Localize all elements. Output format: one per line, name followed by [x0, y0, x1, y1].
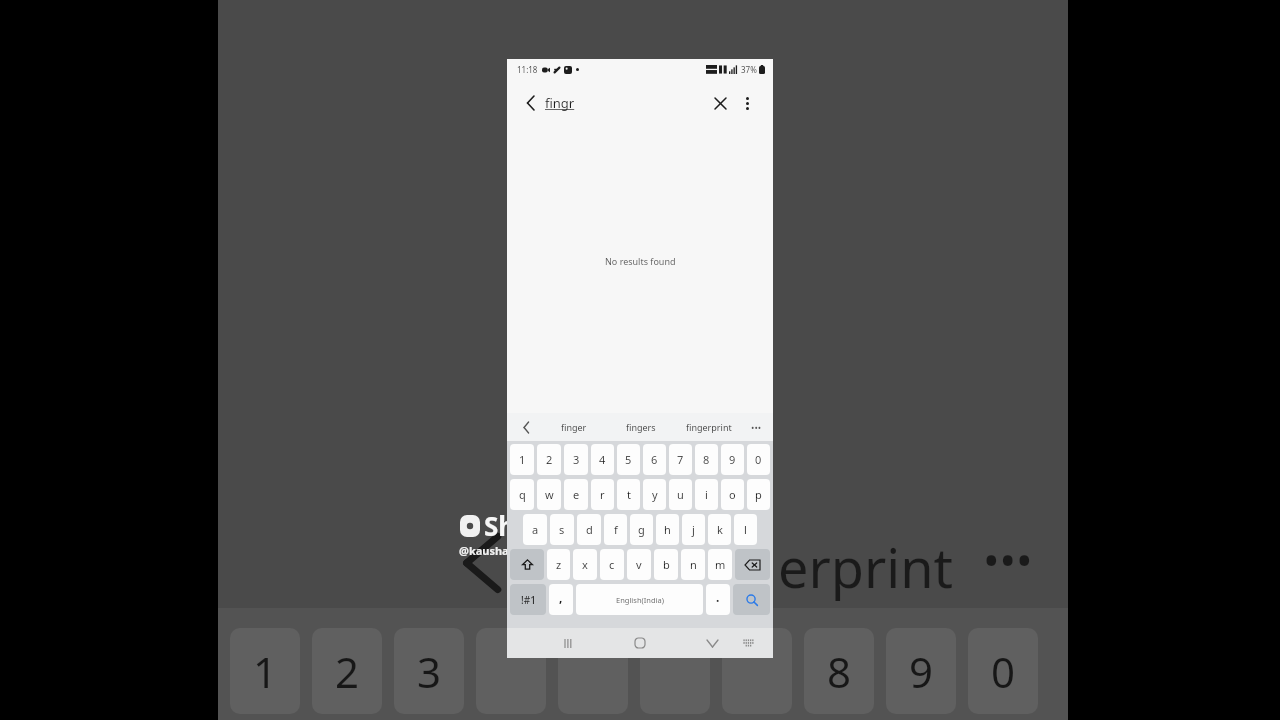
button[interactable]: More options	[734, 90, 760, 116]
staticText: 3	[417, 643, 442, 700]
button[interactable]: l	[734, 514, 757, 545]
staticText: g	[638, 522, 645, 537]
button[interactable]: ,	[549, 584, 573, 615]
button[interactable]: 4	[591, 444, 614, 475]
button[interactable]: Home	[627, 630, 653, 656]
staticText: s	[559, 522, 565, 537]
staticText: 2	[335, 643, 360, 700]
staticText: fingerprint	[686, 421, 732, 433]
button[interactable]: u	[669, 479, 692, 510]
staticText: No results found	[605, 255, 676, 267]
button[interactable]: 0	[747, 444, 770, 475]
button[interactable]: !#1	[510, 584, 546, 615]
button[interactable]: 6	[643, 444, 666, 475]
staticText: a	[532, 522, 539, 537]
staticText: z	[556, 557, 562, 572]
button[interactable]: s	[550, 514, 574, 545]
staticText: e	[573, 487, 580, 502]
staticText: 2	[546, 452, 553, 467]
button[interactable]: Shift	[510, 549, 544, 580]
button[interactable]: 8	[695, 444, 718, 475]
button[interactable]: f	[604, 514, 627, 545]
staticText: Sho	[484, 508, 532, 543]
staticText: •••	[751, 421, 762, 433]
staticText: d	[586, 522, 593, 537]
button[interactable]: Search	[733, 584, 770, 615]
button[interactable]: 2	[537, 444, 561, 475]
button[interactable]: t	[617, 479, 640, 510]
staticText: erprint	[778, 530, 954, 604]
staticText: w	[545, 487, 554, 502]
button[interactable]: b	[654, 549, 678, 580]
button[interactable]: v	[627, 549, 651, 580]
button[interactable]: 9	[721, 444, 744, 475]
staticText: @kaushalkishor8885	[459, 543, 572, 558]
staticText: 8	[703, 452, 710, 467]
button[interactable]: y	[643, 479, 666, 510]
button[interactable]: r	[591, 479, 614, 510]
staticText: u	[677, 487, 684, 502]
button[interactable]: 1	[510, 444, 534, 475]
button[interactable]: d	[577, 514, 601, 545]
staticText: n	[690, 557, 697, 572]
button[interactable]: x	[573, 549, 597, 580]
button[interactable]: i	[695, 479, 718, 510]
button[interactable]: Recent apps	[555, 630, 581, 656]
button[interactable]: p	[747, 479, 770, 510]
button[interactable]: c	[600, 549, 624, 580]
staticText: o	[729, 487, 736, 502]
staticText: 1	[519, 452, 526, 467]
button[interactable]: g	[630, 514, 653, 545]
staticText: 6	[651, 452, 658, 467]
button[interactable]: Clear search	[707, 90, 733, 116]
button[interactable]: More suggestions	[745, 416, 767, 438]
staticText: h	[664, 522, 671, 537]
staticText: fing	[548, 530, 648, 604]
button[interactable]: z	[547, 549, 570, 580]
staticText: 4	[599, 452, 606, 467]
button[interactable]: o	[721, 479, 744, 510]
staticText: 3	[573, 452, 580, 467]
button[interactable]: h	[656, 514, 679, 545]
staticText: q	[519, 487, 526, 502]
staticText: k	[717, 522, 723, 537]
button[interactable]: m	[708, 549, 732, 580]
button[interactable]: finger	[561, 413, 587, 441]
button[interactable]: fingers	[626, 413, 656, 441]
button[interactable]: Hide keyboard	[699, 630, 725, 656]
button[interactable]: j	[682, 514, 705, 545]
staticText: 9	[729, 452, 736, 467]
button[interactable]: k	[708, 514, 731, 545]
staticText: r	[600, 487, 605, 502]
button[interactable]: w	[537, 479, 561, 510]
button[interactable]: Previous suggestions	[515, 416, 537, 438]
staticText: fingr	[545, 94, 575, 112]
button[interactable]: Change keyboard	[735, 630, 761, 656]
button[interactable]: fingerprint	[686, 413, 732, 441]
button[interactable]: Space	[576, 584, 703, 615]
button[interactable]: e	[564, 479, 588, 510]
staticText: 0	[755, 452, 762, 467]
staticText: x	[582, 557, 588, 572]
staticText: c	[609, 557, 615, 572]
staticText: .	[716, 589, 720, 605]
button[interactable]: 7	[669, 444, 692, 475]
staticText: 7	[677, 452, 684, 467]
staticText: p	[755, 487, 762, 502]
button[interactable]: Backspace	[735, 549, 770, 580]
staticText: j	[692, 522, 695, 537]
staticText: fingers	[626, 421, 656, 433]
button[interactable]: a	[523, 514, 547, 545]
staticText: 1	[253, 643, 278, 700]
button[interactable]: .	[706, 584, 730, 615]
button[interactable]: fingr	[545, 94, 575, 112]
staticText: English(India)	[616, 595, 664, 605]
staticText: 8	[827, 643, 852, 700]
button[interactable]: 5	[617, 444, 640, 475]
button[interactable]: Back	[519, 91, 543, 115]
staticText: finger	[561, 421, 587, 433]
button[interactable]: n	[681, 549, 705, 580]
button[interactable]: 3	[564, 444, 588, 475]
button[interactable]: q	[510, 479, 534, 510]
staticText: i	[705, 487, 708, 502]
